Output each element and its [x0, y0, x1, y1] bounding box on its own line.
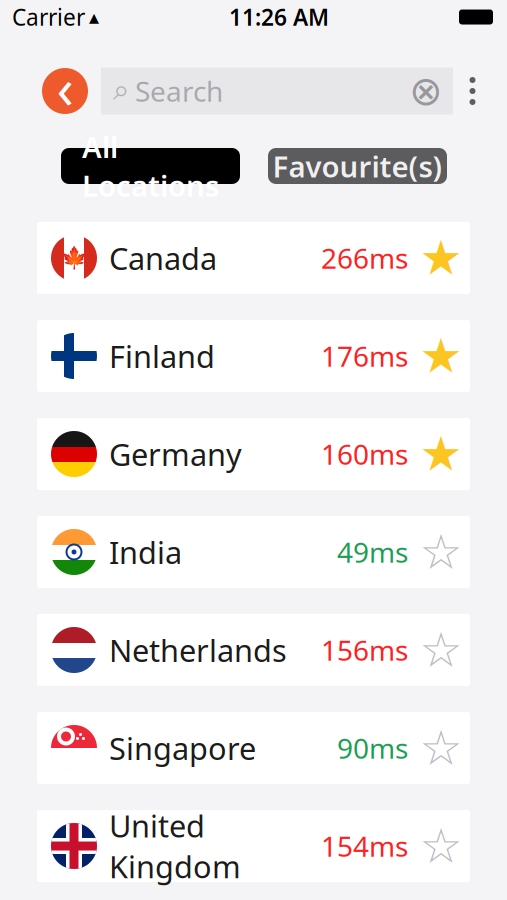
button[interactable]: All Locations	[61, 148, 240, 184]
staticText: 11:26 AM	[229, 2, 329, 32]
staticText: ★	[419, 329, 462, 383]
button[interactable]: Singapore	[37, 712, 470, 784]
button[interactable]: Germany	[37, 418, 470, 490]
staticText: ▴	[89, 6, 99, 28]
staticText: Carrier	[12, 2, 85, 32]
staticText: United Kingdom	[109, 805, 241, 887]
button[interactable]: 🍁	[37, 222, 470, 294]
staticText: ⊗	[409, 68, 443, 114]
staticText: 160ms	[321, 435, 408, 473]
staticText: ‹	[56, 50, 73, 124]
staticText: ★	[419, 427, 462, 481]
staticText: ☆	[419, 819, 462, 873]
staticText: Canada	[109, 238, 217, 278]
staticText: 156ms	[321, 631, 408, 669]
staticText: 49ms	[337, 533, 408, 571]
staticText: 266ms	[321, 239, 408, 277]
staticText: Finland	[109, 336, 215, 376]
staticText: 90ms	[337, 729, 408, 767]
staticText: ★	[419, 231, 462, 285]
button[interactable]: India	[37, 516, 470, 588]
staticText: ⌕	[113, 77, 129, 105]
staticText: Netherlands	[109, 630, 287, 670]
staticText: Germany	[109, 434, 242, 474]
button[interactable]: Favourite(s)	[268, 148, 447, 184]
staticText: ☆	[419, 623, 462, 677]
staticText: Favourite(s)	[272, 146, 442, 185]
staticText: ☆	[419, 525, 462, 579]
staticText: 154ms	[321, 827, 408, 865]
button[interactable]: ⌕	[101, 67, 453, 114]
button[interactable]: More options	[453, 65, 492, 117]
button[interactable]: Finland	[37, 320, 470, 392]
staticText: Search	[135, 72, 223, 110]
staticText: 176ms	[321, 337, 408, 375]
staticText: ☆	[419, 721, 462, 775]
staticText: Singapore	[109, 728, 256, 768]
button[interactable]: United Kingdom	[37, 810, 470, 882]
staticText: All Locations	[82, 127, 219, 205]
button[interactable]: Netherlands	[37, 614, 470, 686]
staticText: India	[109, 532, 182, 572]
button[interactable]: Back	[39, 65, 91, 117]
staticText: 🍁	[60, 246, 87, 270]
